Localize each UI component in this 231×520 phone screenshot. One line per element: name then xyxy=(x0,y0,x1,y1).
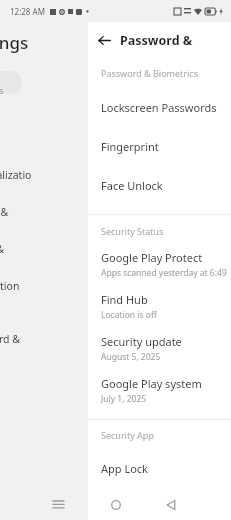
button[interactable]: Face Unlock xyxy=(88,166,231,205)
staticText: August 5, 2025 xyxy=(101,351,161,363)
button[interactable]: Google Play Protect xyxy=(88,243,231,285)
staticText: Notification Center xyxy=(0,279,34,293)
button[interactable]: Security update xyxy=(88,327,231,369)
staticText: Lockscreen Passwords xyxy=(101,100,217,115)
staticText: July 1, 2025 xyxy=(101,393,147,405)
staticText: Personalization xyxy=(0,168,34,182)
button[interactable]: Password & Security xyxy=(0,332,34,346)
button[interactable]: Search settings xyxy=(0,71,22,94)
staticText: Security update xyxy=(101,334,182,349)
button[interactable]: Lockscreen Passwords xyxy=(88,88,231,127)
button[interactable]: Find Hub xyxy=(88,285,231,327)
staticText: Location is off xyxy=(101,309,157,321)
button[interactable]: Google Play system update xyxy=(88,369,231,411)
button[interactable]: Fingerprint xyxy=(88,127,231,166)
staticText: Sound & Vibration xyxy=(0,242,34,256)
staticText: Settings xyxy=(0,31,29,54)
staticText: Password & Biometrics xyxy=(101,67,199,79)
button[interactable]: Notification Center xyxy=(0,279,34,293)
button[interactable]: Sound & Vibration xyxy=(0,242,34,256)
button[interactable]: Recent apps xyxy=(47,494,69,516)
staticText: Find Hub xyxy=(101,292,148,307)
staticText: Fingerprint xyxy=(101,139,159,154)
button[interactable]: Display & Brightness xyxy=(0,205,34,219)
staticText: Security Status xyxy=(101,225,164,237)
staticText: App Lock xyxy=(101,461,148,476)
staticText: Password & Security xyxy=(0,332,34,346)
button[interactable]: Back xyxy=(92,28,116,52)
staticText: Search settings xyxy=(0,71,22,94)
staticText: Display & Brightness xyxy=(0,205,34,219)
button[interactable]: Home xyxy=(105,494,127,516)
staticText: Password & Security xyxy=(120,32,231,49)
staticText: Google Play Protect xyxy=(101,250,203,265)
staticText: Security App xyxy=(101,429,154,441)
staticText: 12:28 AM xyxy=(10,6,45,17)
staticText: Google Play system update xyxy=(101,376,231,391)
staticText: Apps scanned yesterday at 6:49 PM xyxy=(101,267,231,279)
button[interactable]: Back xyxy=(160,494,182,516)
staticText: Face Unlock xyxy=(101,178,163,193)
button[interactable]: App Lock xyxy=(88,449,231,488)
button[interactable]: Personalization xyxy=(0,168,34,182)
